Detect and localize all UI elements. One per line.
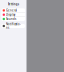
staticText: General bbox=[6, 9, 17, 12]
staticText: Settings bbox=[8, 2, 19, 6]
button[interactable]: Display bbox=[1, 13, 25, 17]
button[interactable]: General bbox=[1, 8, 25, 12]
staticText: Notifications bbox=[6, 22, 21, 30]
button[interactable]: Notifications bbox=[1, 24, 25, 28]
staticText: Display bbox=[6, 13, 15, 16]
staticText: Sounds bbox=[6, 17, 16, 21]
button[interactable]: Sounds bbox=[1, 17, 25, 21]
